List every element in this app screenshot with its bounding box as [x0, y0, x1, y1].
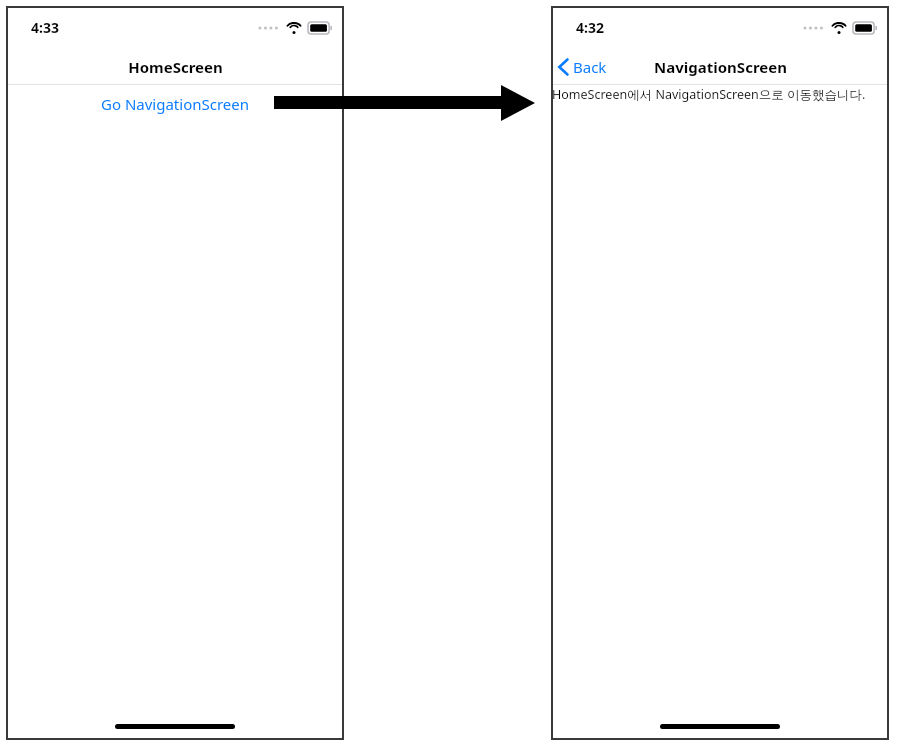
button[interactable]: Back [551, 53, 615, 81]
staticText: NavigationScreen [654, 57, 787, 77]
staticText: 4:33 [31, 18, 59, 37]
staticText: 4:32 [576, 18, 604, 37]
other: Back [558, 58, 569, 76]
button[interactable]: Go NavigationScreen [95, 92, 255, 116]
staticText: Back [573, 57, 607, 77]
staticText: HomeScreen에서 NavigationScreen으로 이동했습니다. [552, 86, 866, 103]
staticText: HomeScreen [128, 57, 223, 77]
